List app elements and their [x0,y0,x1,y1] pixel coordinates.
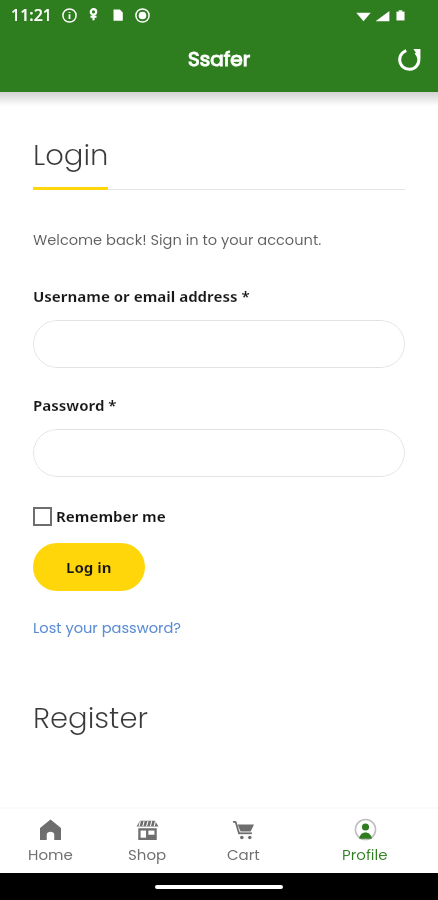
button[interactable]: Cart [199,809,287,873]
staticText: Username or email address * [33,286,250,306]
button[interactable]: Lost your password? [33,618,181,638]
staticText: Login [33,135,109,176]
button[interactable]: Refresh [388,37,432,81]
button[interactable]: Profile [321,809,409,873]
staticText: Shop [128,844,167,865]
staticText: Welcome back! Sign in to your account. [33,230,322,250]
staticText: Password * [33,395,117,415]
staticText: 11:21 [11,4,52,26]
staticText: Cart [227,844,260,865]
staticText: Register [33,698,148,739]
staticText: Profile [342,844,388,865]
staticText: Log in [66,557,112,577]
button[interactable]: Shop [103,809,191,873]
staticText: Home [28,844,73,865]
button[interactable]: Home [6,809,94,873]
button[interactable] [33,320,405,368]
staticText: Ssafer [188,45,251,73]
button[interactable]: Log in [33,543,145,591]
button[interactable]: Remember me [33,506,166,526]
staticText: Remember me [56,506,166,526]
button[interactable] [33,429,405,477]
